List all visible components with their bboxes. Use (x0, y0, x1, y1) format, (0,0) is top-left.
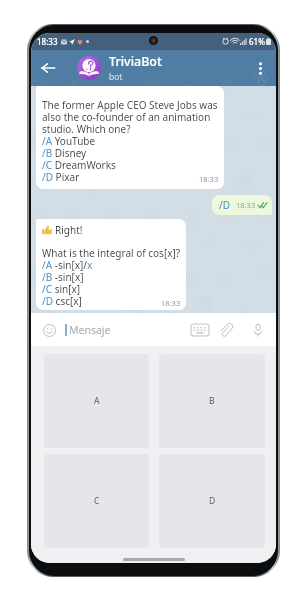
button[interactable]: More options (248, 56, 272, 80)
button[interactable]: A (44, 354, 149, 448)
staticText: /D (219, 198, 231, 212)
staticText: Right! (55, 223, 83, 237)
button[interactable]: Back (31, 50, 65, 86)
button[interactable]: Emoji (40, 321, 58, 339)
staticText: bot (109, 71, 123, 83)
staticText: A (94, 395, 100, 407)
staticText: D (209, 495, 216, 507)
staticText: The former Apple CEO Steve Jobs was also… (42, 98, 219, 184)
staticText: Mensaje (69, 323, 111, 337)
button[interactable]: Attach (215, 319, 237, 341)
staticText: What is the integral of cos[x]? /A -sin[… (42, 246, 181, 308)
staticText: 18:33 (37, 36, 58, 47)
staticText: TriviaBot (109, 53, 162, 70)
button[interactable]: C (44, 454, 149, 548)
staticText: 18:33 (161, 298, 181, 308)
staticText: 18:33 (236, 200, 256, 210)
button[interactable]: Keyboard (187, 318, 212, 342)
staticText: B (209, 395, 215, 407)
staticText: 61% (249, 36, 265, 47)
button[interactable]: /D (212, 195, 272, 215)
button[interactable]: B (159, 354, 265, 448)
staticText: C (94, 495, 100, 507)
button[interactable]: D (159, 454, 265, 548)
button[interactable]: Voice message (247, 319, 269, 341)
staticText: 18:33 (199, 174, 219, 184)
button[interactable]: The former Apple CEO Steve Jobs was also… (36, 86, 224, 189)
button[interactable]: Right! (36, 219, 186, 310)
